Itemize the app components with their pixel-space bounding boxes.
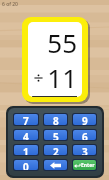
staticText: 4 [23,130,29,140]
staticText: 55 [47,25,77,60]
button[interactable]: 6 [73,130,96,140]
staticText: 0 [23,160,29,170]
staticText: 6 of 20 [2,1,18,8]
staticText: 5 [53,130,59,140]
staticText: 9 [82,114,88,125]
button[interactable]: 5 [44,130,67,140]
button[interactable]: 4 [14,130,38,140]
button[interactable]: 9 [73,114,96,125]
button[interactable]: 7 [14,114,38,125]
button[interactable]: Enter [73,160,96,170]
staticText: 8 [53,114,59,125]
staticText: 7 [23,114,29,125]
button[interactable]: 8 [44,114,67,125]
staticText: 11 [47,60,77,95]
staticText: 1 [23,145,29,155]
staticText: 6 [82,130,88,140]
staticText: 3 [82,145,88,155]
staticText: Enter [81,162,95,169]
button[interactable]: 55 [22,17,88,102]
staticText: 2 [53,145,59,155]
button[interactable]: 3 [73,145,96,155]
button[interactable]: 2 [44,145,67,155]
button[interactable]: Backspace [44,160,67,170]
button[interactable]: 0 [14,160,38,170]
button[interactable]: 1 [14,145,38,155]
